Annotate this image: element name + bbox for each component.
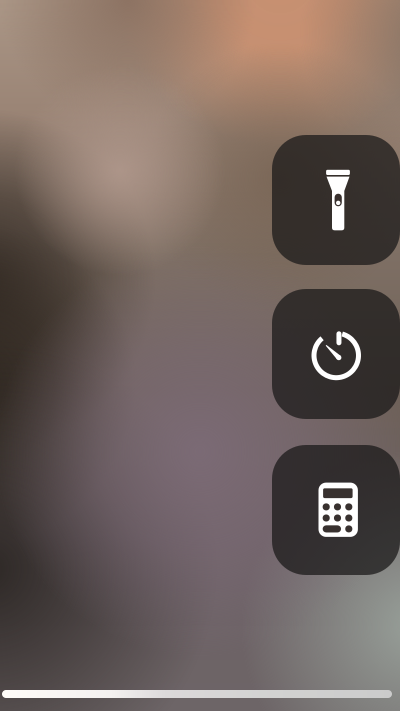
button[interactable]: Timer bbox=[272, 289, 400, 419]
button[interactable]: Flashlight bbox=[272, 135, 400, 265]
button[interactable]: Calculator bbox=[272, 445, 400, 575]
